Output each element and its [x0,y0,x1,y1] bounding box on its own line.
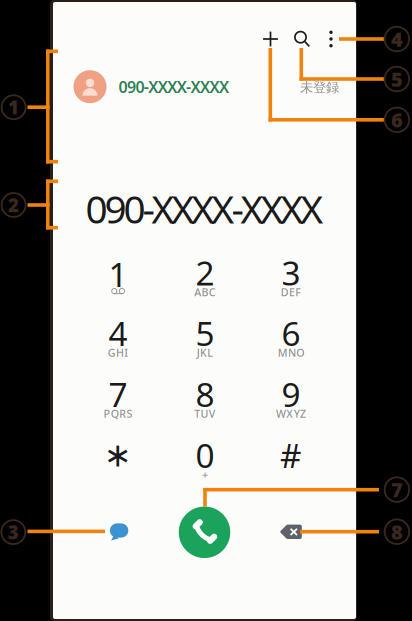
staticText: 3 [8,520,19,544]
staticText: 4 [108,311,127,355]
button[interactable]: 0 [163,432,247,488]
staticText: ∗ [104,436,132,474]
staticText: MNO [278,345,304,360]
staticText: JKL [197,345,213,360]
staticText: 3 [281,250,300,295]
staticText: PQRS [103,406,132,421]
staticText: 2 [195,250,214,295]
staticText: WXYZ [276,406,306,421]
staticText: # [280,433,302,477]
staticText: 8 [195,372,214,416]
staticText: 7 [108,372,127,416]
button[interactable]: Add to contacts [257,26,283,52]
staticText: GHI [108,345,128,360]
button[interactable]: Call [179,506,230,558]
staticText: 1 [108,252,127,296]
staticText: 2 [8,193,19,217]
staticText: 090-XXXX-XXXX [85,183,323,234]
button[interactable]: 8 [163,371,247,427]
button[interactable]: 6 [249,310,333,366]
staticText: 7 [391,476,403,503]
button[interactable]: 3 [249,250,333,306]
button[interactable]: More options [320,26,342,52]
staticText: 090-XXXX-XXXX [118,76,229,97]
button[interactable]: Delete [266,507,316,557]
staticText: 8 [391,518,403,545]
button[interactable]: 4 [76,310,160,366]
staticText: 1 [8,95,19,120]
staticText: 6 [281,311,300,355]
button[interactable]: ∗ [76,432,160,488]
button[interactable]: 5 [163,310,247,366]
button[interactable]: 2 [163,250,247,306]
staticText: 9 [281,372,300,416]
button[interactable]: Send message [94,507,144,557]
staticText: 未登録 [300,79,339,96]
staticText: 0 [195,433,214,477]
button[interactable]: 7 [76,371,160,427]
staticText: 5 [195,311,214,355]
staticText: + [202,467,208,482]
button[interactable]: # [249,432,333,488]
button[interactable]: 090-XXXX-XXXX [73,67,263,107]
staticText: 6 [391,106,403,133]
staticText: 5 [391,66,403,92]
staticText: TUV [194,406,216,421]
staticText: DEF [281,285,301,299]
button[interactable]: 1 [76,250,160,306]
button[interactable]: Search [288,26,314,52]
staticText: 4 [391,26,403,52]
staticText: ABC [194,285,216,299]
button[interactable]: 9 [249,371,333,427]
